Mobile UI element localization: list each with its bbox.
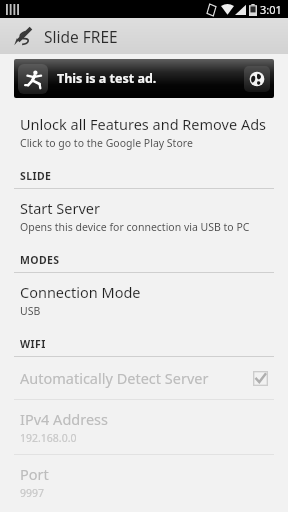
staticText: Slide FREE: [44, 26, 118, 47]
staticText: Port: [20, 464, 49, 484]
button[interactable]: Automatically Detect Server: [0, 357, 288, 399]
staticText: Click to go to the Google Play Store: [20, 136, 193, 150]
button[interactable]: Connection Mode: [0, 273, 288, 327]
staticText: USB: [20, 304, 41, 318]
staticText: Opens this device for connection via USB…: [20, 220, 250, 234]
staticText: Start Server: [20, 198, 100, 218]
button[interactable]: Unlock all Features and Remove Ads: [0, 105, 288, 159]
button[interactable]: Advertisement: [14, 59, 274, 98]
staticText: IPv4 Address: [20, 409, 108, 429]
staticText: 9997: [20, 486, 45, 500]
staticText: 192.168.0.0: [20, 431, 77, 445]
staticText: Connection Mode: [20, 282, 141, 302]
staticText: Unlock all Features and Remove Ads: [20, 114, 267, 134]
staticText: Automatically Detect Server: [20, 368, 209, 388]
button[interactable]: Port: [0, 455, 288, 509]
button[interactable]: IPv4 Address: [0, 400, 288, 454]
button[interactable]: Open ad in browser: [244, 66, 270, 92]
staticText: MODES: [20, 253, 60, 267]
staticText: This is a test ad.: [57, 70, 157, 87]
staticText: SLIDE: [20, 169, 52, 183]
button[interactable]: App icon: [0, 18, 288, 54]
staticText: WIFI: [20, 337, 46, 351]
other: Automatically Detect Server checkbox: [253, 371, 268, 386]
other: App icon: [12, 25, 34, 47]
staticText: 3:01: [260, 2, 282, 17]
button[interactable]: Start Server: [0, 189, 288, 243]
